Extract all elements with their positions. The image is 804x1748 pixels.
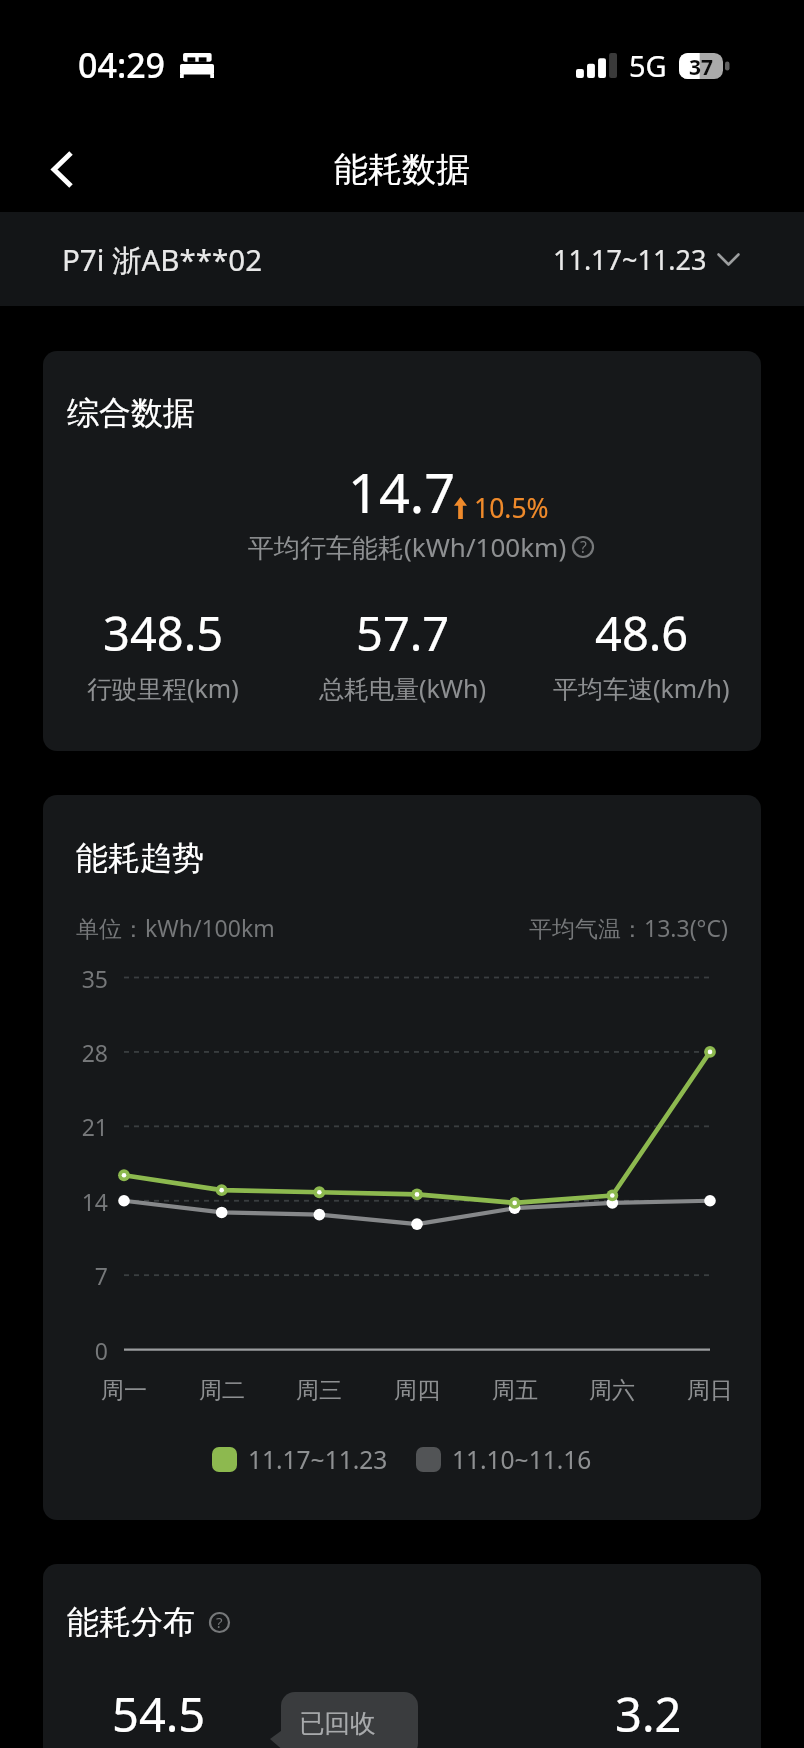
staticText: 04:29	[78, 42, 166, 88]
staticText: 14.7	[348, 455, 456, 529]
staticText: 能耗分布	[67, 1602, 195, 1642]
staticText: 能耗数据	[334, 148, 470, 191]
staticText: 已回收	[299, 1707, 376, 1739]
staticText: 11.17~11.23	[553, 241, 707, 278]
staticText: 10.5%	[474, 490, 549, 526]
staticText: 37	[689, 53, 714, 79]
staticText: ?	[580, 536, 587, 558]
staticText: 348.5	[103, 601, 224, 665]
staticText: 3.2	[615, 1682, 682, 1746]
staticText: 单位：kWh/100km	[76, 912, 275, 943]
staticText: 11.10~11.16	[452, 1443, 592, 1476]
staticText: 总耗电量(kWh)	[319, 671, 487, 705]
button[interactable]: Back	[32, 141, 92, 201]
staticText: 周四	[394, 1376, 440, 1405]
staticText: 周一	[101, 1376, 147, 1405]
staticText: 0	[94, 1335, 108, 1366]
staticText: 周二	[199, 1376, 245, 1405]
staticText: 57.7	[356, 601, 450, 665]
staticText: 平均车速(km/h)	[553, 671, 730, 705]
staticText: 5G	[629, 46, 667, 85]
staticText: 7	[94, 1260, 108, 1291]
staticText: 21	[81, 1111, 108, 1142]
staticText: 平均气温：13.3(°C)	[529, 912, 728, 943]
button[interactable]: 11.17~11.23	[553, 241, 740, 278]
staticText: 周五	[492, 1376, 538, 1405]
staticText: ?	[216, 1612, 223, 1633]
staticText: 28	[81, 1037, 108, 1068]
staticText: P7i 浙AB***02	[62, 239, 263, 279]
staticText: 综合数据	[67, 393, 195, 433]
button[interactable]: 已回收	[281, 1692, 418, 1748]
staticText: 能耗趋势	[76, 838, 204, 878]
staticText: 11.17~11.23	[248, 1443, 388, 1476]
staticText: 48.6	[595, 601, 689, 665]
staticText: 周日	[687, 1376, 733, 1405]
staticText: 14	[81, 1186, 108, 1217]
staticText: 周三	[296, 1376, 342, 1405]
staticText: 35	[81, 963, 108, 994]
staticText: 平均行车能耗(kWh/100km)	[248, 529, 567, 565]
staticText: 周六	[589, 1376, 635, 1405]
staticText: 行驶里程(km)	[87, 671, 239, 705]
staticText: 54.5	[112, 1682, 206, 1746]
